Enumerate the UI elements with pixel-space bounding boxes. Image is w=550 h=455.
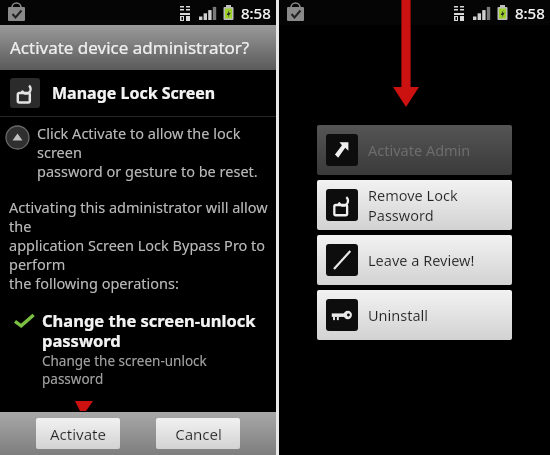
staticText: Uninstall [368, 305, 429, 325]
button[interactable]: Leave a Review! [317, 235, 512, 285]
staticText: Activate device administrator? [10, 36, 250, 59]
staticText: Remove Lock Password [368, 185, 512, 225]
button[interactable]: Activate [36, 418, 120, 449]
staticText: Change the screen-unlock password [42, 309, 256, 352]
staticText: Change the screen-unlock password [42, 352, 268, 388]
staticText: Click Activate to allow the lock screen … [37, 123, 268, 181]
staticText: 8:58 [241, 3, 271, 23]
button[interactable]: Uninstall [317, 290, 512, 340]
staticText: Activate Admin [368, 140, 471, 160]
button[interactable]: Remove Lock Password [317, 180, 512, 230]
staticText: Leave a Review! [368, 250, 475, 270]
staticText: Activating this administrator will allow… [9, 197, 270, 293]
button[interactable]: Cancel [156, 418, 240, 449]
staticText: Cancel [175, 424, 222, 444]
staticText: 8:58 [515, 3, 545, 23]
button[interactable]: Activate Admin [317, 125, 512, 175]
staticText: Manage Lock Screen [52, 82, 216, 104]
staticText: Activate [50, 424, 106, 444]
